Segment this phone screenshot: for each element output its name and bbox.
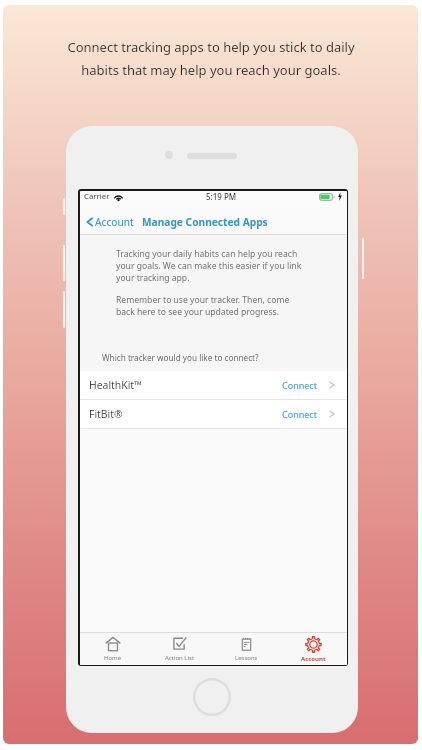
staticText: habits that may help you reach your goal… — [81, 61, 341, 79]
staticText: Connect — [282, 408, 317, 420]
staticText: Remember to use your tracker. Then, come… — [116, 294, 290, 318]
staticText: Tracking your daily habits can help you … — [116, 248, 302, 284]
staticText: Home — [104, 654, 122, 662]
staticText: Account — [95, 215, 134, 229]
staticText: HealthKit™ — [89, 378, 143, 392]
staticText: 5:19 PM — [206, 191, 237, 202]
button[interactable]: Lessons — [213, 633, 280, 665]
staticText: Connect tracking apps to help you stick … — [67, 38, 355, 56]
button[interactable]: HealthKit™ — [80, 371, 347, 399]
staticText: Manage Connected Apps — [142, 215, 268, 229]
staticText: Lessons — [235, 654, 258, 662]
button[interactable]: Account — [85, 215, 135, 229]
staticText: Action List — [165, 654, 195, 662]
button[interactable]: Account — [280, 633, 347, 665]
staticText: Which tracker would you like to connect? — [102, 352, 259, 363]
staticText: FitBit® — [89, 407, 123, 421]
button[interactable]: Home — [80, 633, 146, 665]
button[interactable]: Action List — [146, 633, 213, 665]
button[interactable]: FitBit® — [80, 400, 347, 428]
staticText: Carrier — [84, 191, 110, 202]
staticText: Account — [301, 655, 326, 663]
staticText: Connect — [282, 379, 317, 391]
